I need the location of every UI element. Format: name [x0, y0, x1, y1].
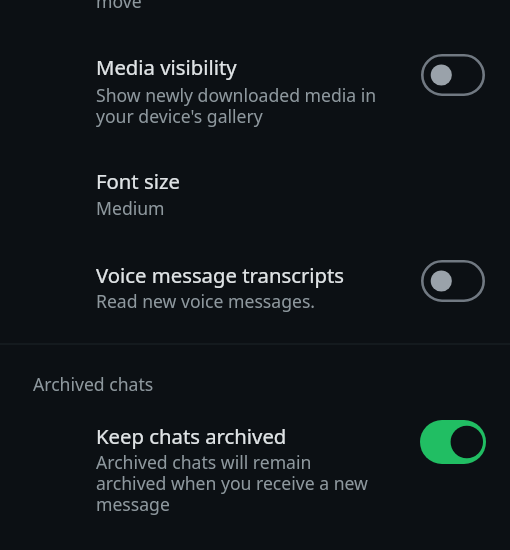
staticText: move [96, 0, 142, 13]
button[interactable]: Keep chats archived [0, 414, 510, 526]
staticText: Keep chats archived [96, 424, 287, 450]
staticText: Read new voice messages. [96, 292, 316, 313]
staticText: Medium [96, 199, 165, 220]
button[interactable]: Media visibility [0, 45, 510, 137]
button[interactable]: Voice message transcripts [0, 253, 510, 325]
staticText: Show newly downloaded media in your devi… [96, 86, 377, 128]
button[interactable]: Voice message transcripts toggle, off [421, 260, 485, 302]
button[interactable]: Media visibility toggle, off [421, 54, 485, 96]
staticText: Archived chats [33, 375, 154, 396]
button[interactable]: Font size [0, 160, 510, 230]
staticText: Font size [96, 169, 180, 195]
staticText: Archived chats will remain archived when… [96, 453, 368, 516]
button[interactable]: Keep chats archived toggle, on [420, 420, 486, 464]
staticText: Media visibility [96, 55, 237, 81]
staticText: Voice message transcripts [96, 263, 345, 289]
